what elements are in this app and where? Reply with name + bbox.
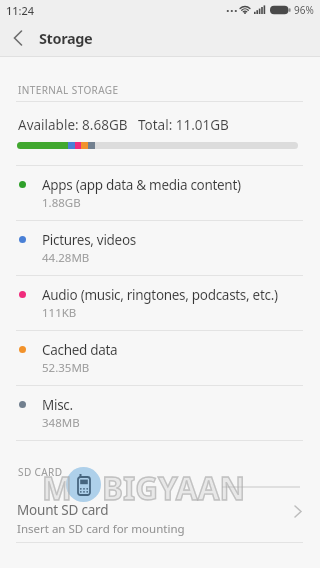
button[interactable]: Misc. <box>0 386 320 441</box>
button[interactable] <box>0 20 36 56</box>
staticText: 348MB <box>42 415 80 431</box>
staticText: SD CARD <box>18 465 63 479</box>
staticText: Audio (music, ringtones, podcasts, etc.) <box>42 286 278 304</box>
staticText: Total: 11.01GB <box>138 116 229 134</box>
staticText: Insert an SD card for mounting <box>17 521 185 537</box>
staticText: Mount SD card <box>17 501 109 519</box>
staticText: BIGYAAN <box>102 466 246 509</box>
staticText: M <box>42 466 72 509</box>
staticText: 1.88GB <box>42 195 81 211</box>
staticText: Storage <box>39 28 93 48</box>
staticText: Pictures, videos <box>42 231 136 249</box>
button[interactable]: Pictures, videos <box>0 221 320 276</box>
staticText: M <box>42 466 72 509</box>
staticText: Apps (app data & media content) <box>42 176 241 194</box>
button[interactable]: Apps (app data & media content) <box>0 166 320 221</box>
button[interactable]: Cached data <box>0 331 320 386</box>
staticText: 44.28MB <box>42 250 90 266</box>
staticText: Cached data <box>42 341 118 359</box>
staticText: 111KB <box>42 305 77 321</box>
staticText: INTERNAL STORAGE <box>18 83 119 97</box>
staticText: BIGYAAN <box>102 466 246 509</box>
button[interactable]: Mount SD card <box>0 479 320 543</box>
button[interactable]: Audio (music, ringtones, podcasts, etc.) <box>0 276 320 331</box>
staticText: 11:24 <box>6 3 35 18</box>
staticText: Available: 8.68GB <box>18 116 128 134</box>
staticText: 52.35MB <box>42 360 90 376</box>
staticText: Misc. <box>42 396 73 414</box>
staticText: 96% <box>294 3 314 17</box>
